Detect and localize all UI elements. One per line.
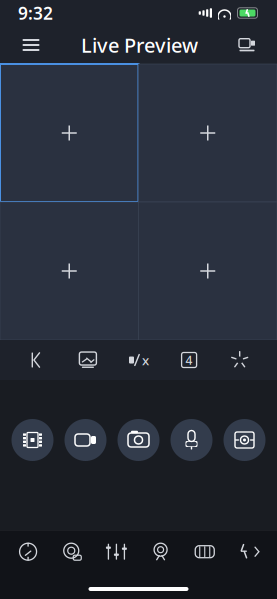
button[interactable]: Take photo [112, 419, 165, 461]
button[interactable]: Audio [165, 419, 218, 461]
staticText: 4 [186, 352, 193, 368]
button[interactable]: Wipers [183, 541, 227, 563]
staticText: x [142, 351, 149, 369]
button[interactable]: Orientation [6, 541, 50, 563]
button[interactable]: Favorite [214, 350, 265, 370]
button[interactable]: Settings [94, 541, 138, 563]
button[interactable]: Speed [50, 541, 94, 563]
button[interactable]: Add camera [138, 202, 277, 340]
button[interactable]: Camera view [231, 30, 263, 60]
button[interactable]: Add camera [138, 64, 277, 202]
button[interactable]: Add camera [0, 202, 138, 340]
button[interactable]: Play [12, 351, 63, 369]
button[interactable]: Playback [6, 419, 59, 461]
button[interactable]: Mute [113, 351, 164, 369]
button[interactable]: Selected camera slot [0, 64, 138, 202]
button[interactable]: Record video [59, 419, 112, 461]
button[interactable]: Grid layout [164, 352, 214, 367]
button[interactable]: Focus [218, 419, 271, 461]
button[interactable]: More [227, 542, 271, 562]
staticText: 9:32 [18, 1, 53, 24]
button[interactable]: Location [138, 541, 183, 563]
button[interactable]: Menu [14, 29, 48, 61]
button[interactable]: Snapshot [63, 351, 113, 369]
staticText: Live Preview [81, 32, 198, 58]
